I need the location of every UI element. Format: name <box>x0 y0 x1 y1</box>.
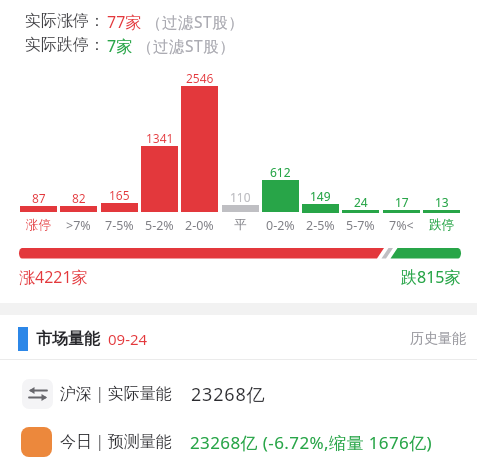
button[interactable]: 今日｜预测量能 <box>0 418 477 466</box>
staticText: 110 <box>230 189 251 205</box>
staticText: 市场量能 <box>36 329 100 349</box>
staticText: >7% <box>66 217 91 234</box>
staticText: 0-2% <box>266 217 295 234</box>
staticText: 23268亿 (-6.72%,缩量 1676亿) <box>190 431 433 454</box>
staticText: 沪深｜实际量能 <box>60 384 172 404</box>
staticText: 历史量能 <box>410 330 466 348</box>
staticText: 77家 <box>107 11 142 33</box>
staticText: 5-2% <box>145 217 174 234</box>
staticText: 1341 <box>146 130 174 146</box>
staticText: 7%< <box>389 217 414 234</box>
button[interactable]: 沪深｜实际量能 <box>0 370 477 418</box>
staticText: 跌停 <box>429 217 454 233</box>
staticText: 149 <box>310 188 331 204</box>
staticText: 跌815家 <box>401 266 461 288</box>
staticText: 2-5% <box>306 217 335 234</box>
staticText: 实际跌停： <box>25 35 105 55</box>
staticText: 612 <box>270 164 291 180</box>
staticText: 13 <box>435 194 449 210</box>
staticText: （过滤ST股） <box>137 35 236 56</box>
staticText: 今日｜预测量能 <box>60 432 172 452</box>
staticText: 2-0% <box>185 217 214 234</box>
staticText: 涨4221家 <box>19 266 88 288</box>
staticText: 09-24 <box>108 329 148 349</box>
staticText: 5-7% <box>346 217 375 234</box>
staticText: 涨停 <box>26 217 51 233</box>
staticText: 165 <box>109 187 130 203</box>
staticText: 7-5% <box>105 217 134 234</box>
staticText: 24 <box>354 194 368 210</box>
staticText: 82 <box>72 190 86 206</box>
staticText: 87 <box>32 190 46 206</box>
staticText: 7家 <box>107 35 133 57</box>
staticText: （过滤ST股） <box>146 11 245 32</box>
staticText: 17 <box>395 194 409 210</box>
staticText: 2546 <box>186 70 214 86</box>
staticText: 23268亿 <box>191 382 266 407</box>
staticText: 平 <box>234 217 247 233</box>
button[interactable]: 市场量能 <box>0 317 477 361</box>
staticText: 实际涨停： <box>25 11 105 31</box>
